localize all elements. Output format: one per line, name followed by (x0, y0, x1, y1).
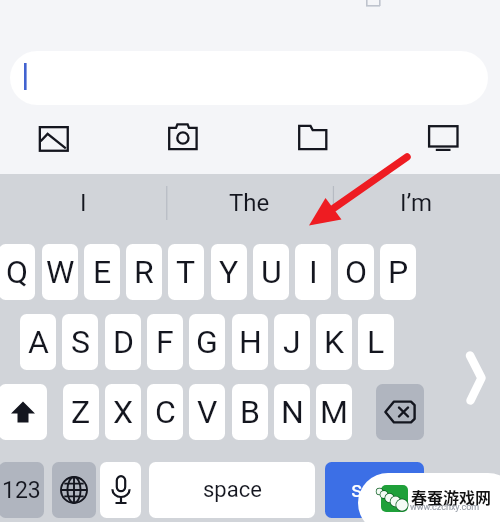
button[interactable]: S (62, 314, 98, 370)
button[interactable]: O (338, 244, 374, 300)
staticText: N (281, 393, 304, 431)
staticText: send (351, 477, 399, 503)
button[interactable]: P (380, 244, 416, 300)
button[interactable]: Backspace (376, 384, 424, 440)
staticText: F (156, 323, 174, 361)
button[interactable]: V (189, 384, 225, 440)
button[interactable]: W (42, 244, 78, 300)
button[interactable]: T (168, 244, 204, 300)
staticText: R (134, 253, 154, 291)
button[interactable]: B (232, 384, 268, 440)
staticText: space (203, 477, 262, 503)
button[interactable]: Insert picture (37, 122, 69, 152)
staticText: Z (71, 393, 91, 431)
button[interactable]: space (149, 462, 315, 518)
button[interactable]: 123 (0, 462, 44, 518)
staticText: L (367, 323, 385, 361)
staticText: H (239, 323, 262, 361)
staticText: M (320, 393, 348, 431)
staticText: P (388, 253, 409, 291)
staticText: S (71, 323, 90, 361)
button[interactable]: A (20, 314, 56, 370)
staticText: W (46, 253, 75, 291)
staticText: K (324, 323, 345, 361)
button[interactable]: I (0, 173, 166, 233)
button[interactable]: R (126, 244, 162, 300)
button[interactable]: G (189, 314, 225, 370)
staticText: Y (219, 253, 239, 291)
button[interactable]: Y (211, 244, 247, 300)
button[interactable]: M (316, 384, 352, 440)
button[interactable]: send (325, 462, 424, 518)
staticText: G (196, 323, 218, 361)
staticText: E (93, 253, 112, 291)
staticText: The (229, 189, 270, 217)
button[interactable]: Switch keyboard (52, 462, 96, 518)
button[interactable]: C (147, 384, 183, 440)
button[interactable]: Voice input (100, 462, 141, 518)
button[interactable]: Take photo (166, 121, 200, 153)
staticText: U (261, 253, 282, 291)
button[interactable]: Files (295, 121, 329, 153)
button[interactable]: N (274, 384, 310, 440)
button[interactable]: I’m (333, 173, 500, 233)
button[interactable]: F (147, 314, 183, 370)
button[interactable]: Shift (0, 384, 47, 440)
staticText: D (113, 323, 134, 361)
staticText: Q (6, 253, 29, 291)
button[interactable]: K (316, 314, 352, 370)
button[interactable]: L (358, 314, 394, 370)
button[interactable]: The (166, 173, 333, 233)
button[interactable]: X (105, 384, 141, 440)
button[interactable]: J (274, 314, 310, 370)
button[interactable]: Q (0, 244, 35, 300)
button[interactable]: I (295, 244, 331, 300)
staticText: J (283, 323, 301, 361)
staticText: C (155, 393, 176, 431)
staticText: T (176, 253, 196, 291)
button[interactable]: U (253, 244, 289, 300)
button[interactable]: H (232, 314, 268, 370)
staticText: A (28, 323, 49, 361)
staticText: X (113, 393, 134, 431)
staticText: B (240, 393, 260, 431)
staticText: I (309, 253, 318, 291)
button[interactable]: Cast to screen (425, 121, 461, 153)
button[interactable] (10, 51, 488, 105)
button[interactable]: E (84, 244, 120, 300)
staticText: O (345, 253, 368, 291)
staticText: www.czchxy.com (410, 502, 480, 513)
staticText: 123 (2, 477, 41, 504)
staticText: I (80, 189, 87, 217)
staticText: I’m (400, 189, 433, 217)
button[interactable]: D (105, 314, 141, 370)
button[interactable]: Z (63, 384, 99, 440)
staticText: 春蚕游戏网 (411, 485, 492, 508)
staticText: V (197, 393, 218, 431)
